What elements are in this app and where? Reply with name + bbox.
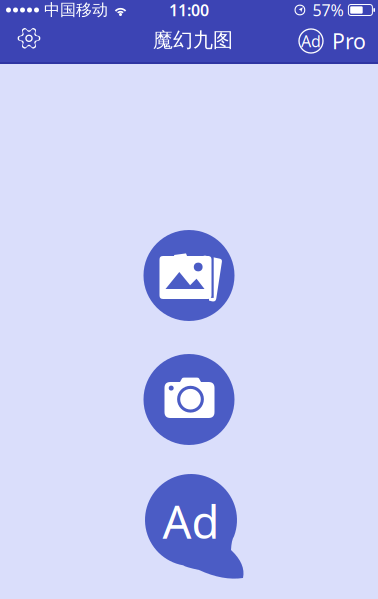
button[interactable]: Pick photos xyxy=(143,230,234,321)
button[interactable]: Ad xyxy=(295,19,370,63)
button[interactable]: Watch ad xyxy=(135,474,243,586)
staticText: Ad xyxy=(301,30,321,52)
staticText: Pro xyxy=(332,27,366,55)
button[interactable]: Settings xyxy=(8,19,52,63)
staticText: 中国移动 xyxy=(44,0,108,20)
staticText: 57% xyxy=(312,0,343,21)
staticText: Ad xyxy=(162,491,219,551)
staticText: 魔幻九图 xyxy=(153,28,233,52)
staticText: 11:00 xyxy=(169,0,209,21)
button[interactable]: Take a photo xyxy=(143,354,234,445)
